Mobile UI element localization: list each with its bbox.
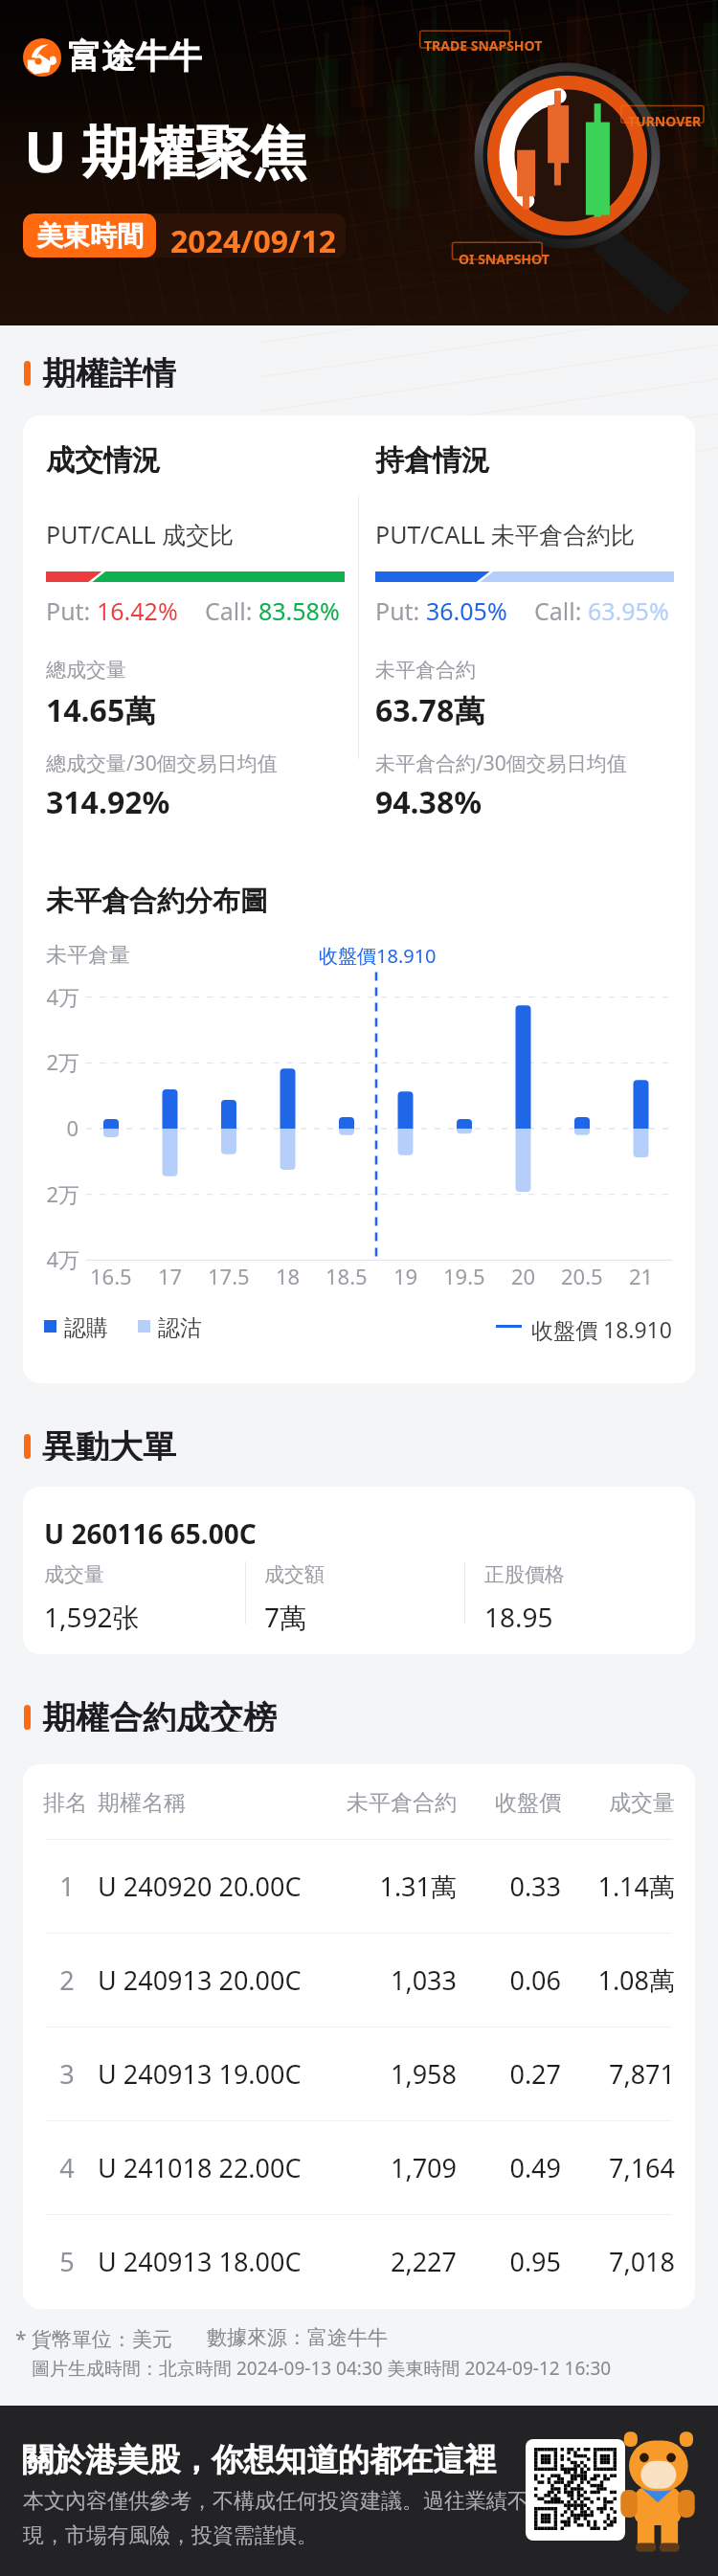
staticText: 14.65萬 [46, 689, 156, 731]
staticText: 期權名稱 [98, 1789, 186, 1817]
staticText: 圖片生成時間：北京時間 2024-09-13 04:30 美東時間 2024-0… [32, 2356, 612, 2381]
staticText: 數據來源：富途牛牛 [207, 2325, 388, 2350]
staticText: 正股價格 [484, 1562, 565, 1587]
staticText: 314.92% [46, 781, 170, 823]
staticText: TRADE SNAPSHOT [424, 36, 543, 55]
button[interactable]: 1 [23, 1840, 695, 1933]
staticText: 63.95% [588, 594, 669, 627]
staticText: 現，市場有風險，投資需謹慎。 [23, 2522, 318, 2549]
staticText: 7萬 [264, 1599, 307, 1635]
staticText: 17.5 [208, 1262, 250, 1290]
staticText: U 240913 20.00C [98, 1962, 302, 1998]
staticText: 1.08萬 [579, 1962, 675, 1998]
staticText: 0.95 [465, 2244, 561, 2279]
staticText: U 期權聚焦 [24, 112, 307, 190]
staticText: 未平倉合約 [332, 1789, 457, 1817]
staticText: U 240913 18.00C [98, 2244, 302, 2279]
staticText: 未平倉合約 [375, 658, 476, 683]
staticText: 關於港美股，你想知道的都在這裡 [22, 2440, 496, 2480]
staticText: 1.14萬 [579, 1869, 675, 1904]
staticText: 未平倉合約分布圖 [46, 884, 268, 919]
staticText: 3 [46, 2056, 88, 2092]
staticText: 2万 [46, 1047, 79, 1076]
staticText: 本文內容僅供參考，不構成任何投資建議。過往業績不預示未來表 [23, 2488, 634, 2515]
staticText: 63.78萬 [375, 689, 485, 731]
staticText: U 240913 19.00C [98, 2056, 302, 2092]
button[interactable]: 2 [23, 1934, 695, 2027]
staticText: 4 [46, 2150, 88, 2185]
staticText: 20 [511, 1262, 536, 1290]
staticText: 0.27 [465, 2056, 561, 2092]
staticText: 未平倉量 [46, 942, 130, 969]
staticText: 成交量 [579, 1789, 675, 1817]
staticText: U 240920 20.00C [98, 1869, 302, 1904]
staticText: 收盤價18.910 [319, 943, 437, 969]
staticText: PUT/CALL 成交比 [46, 518, 235, 550]
staticText: 16.42% [97, 594, 178, 627]
staticText: Put: [46, 594, 97, 627]
staticText: 20.5 [561, 1262, 603, 1290]
staticText: 異動大單 [42, 1426, 176, 1461]
staticText: 2 [46, 1962, 88, 1998]
staticText: 94.38% [375, 781, 482, 823]
staticText: 美東時間 [36, 219, 144, 253]
staticText: 0.33 [465, 1869, 561, 1904]
staticText: 36.05% [426, 594, 507, 627]
staticText: 0.49 [465, 2150, 561, 2185]
staticText: 1,592张 [44, 1599, 140, 1635]
staticText: U 241018 22.00C [98, 2150, 302, 2185]
staticText: 7,164 [579, 2150, 675, 2185]
staticText: 18 [276, 1262, 301, 1290]
staticText: 持倉情況 [375, 442, 490, 479]
staticText: 未平倉合約/30個交易日均值 [375, 750, 627, 777]
staticText: 1.31萬 [332, 1869, 457, 1904]
staticText: 收盤價 [465, 1789, 561, 1817]
staticText: 16.5 [90, 1262, 132, 1290]
staticText: 成交量 [44, 1562, 104, 1587]
staticText: * 貨幣單位：美元 [15, 2325, 173, 2353]
staticText: 2,227 [332, 2244, 457, 2279]
staticText: 18.5 [325, 1262, 368, 1290]
staticText: 7,018 [579, 2244, 675, 2279]
button[interactable]: 3 [23, 2027, 695, 2120]
staticText: 總成交量/30個交易日均值 [46, 750, 278, 777]
staticText: 21 [629, 1262, 654, 1290]
staticText: 4万 [46, 1244, 79, 1273]
staticText: TURNOVER [628, 112, 702, 130]
staticText: 83.58% [258, 594, 340, 627]
staticText: 4万 [46, 982, 79, 1011]
staticText: 收盤價 18.910 [531, 1314, 672, 1344]
staticText: U 260116 65.00C [44, 1515, 257, 1552]
staticText: 7,871 [579, 2056, 675, 2092]
staticText: 排名 [43, 1789, 87, 1817]
staticText: PUT/CALL 未平倉合約比 [375, 518, 636, 550]
staticText: 19.5 [443, 1262, 485, 1290]
button[interactable]: 4 [23, 2121, 695, 2214]
staticText: Put: [375, 594, 426, 627]
staticText: 5 [46, 2244, 88, 2279]
staticText: 18.95 [484, 1599, 553, 1635]
staticText: 2万 [46, 1179, 79, 1208]
staticText: 0.06 [465, 1962, 561, 1998]
staticText: 成交額 [264, 1562, 325, 1587]
staticText: Call: [205, 594, 258, 627]
staticText: 1,709 [332, 2150, 457, 2185]
staticText: 17 [158, 1262, 183, 1290]
staticText: 期權合約成交榜 [42, 1697, 277, 1732]
staticText: 認購 [64, 1314, 108, 1342]
staticText: 1,033 [332, 1962, 457, 1998]
staticText: 0 [46, 1113, 79, 1142]
staticText: 成交情況 [46, 442, 161, 479]
staticText: OI SNAPSHOT [459, 250, 550, 268]
staticText: 認沽 [158, 1314, 202, 1342]
staticText: 1,958 [332, 2056, 457, 2092]
staticText: 富途牛牛 [68, 35, 202, 78]
staticText: 總成交量 [46, 658, 126, 683]
staticText: 1 [46, 1869, 88, 1904]
staticText: 期權詳情 [42, 353, 176, 388]
staticText: 2024/09/12 [170, 220, 336, 258]
button[interactable]: 5 [23, 2215, 695, 2308]
staticText: 19 [393, 1262, 418, 1290]
staticText: Call: [534, 594, 588, 627]
